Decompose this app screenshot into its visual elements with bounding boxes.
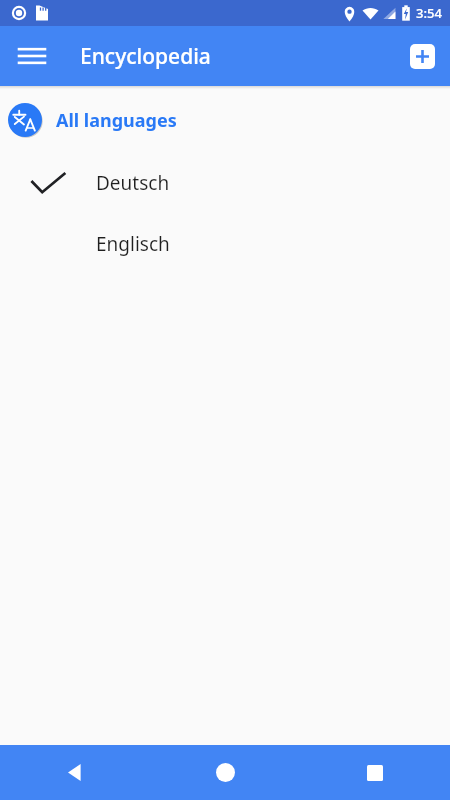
- button[interactable]: Recent apps: [300, 745, 450, 800]
- staticText: Encyclopedia: [80, 42, 211, 71]
- staticText: All languages: [56, 108, 177, 133]
- button[interactable]: Open navigation drawer: [8, 32, 56, 80]
- button[interactable]: Back: [0, 745, 150, 800]
- button[interactable]: Deutsch: [0, 152, 450, 213]
- button[interactable]: All languages: [0, 101, 450, 139]
- staticText: 3:54: [416, 4, 442, 22]
- button[interactable]: Englisch: [0, 213, 450, 274]
- button[interactable]: Home: [150, 745, 300, 800]
- button[interactable]: Add: [400, 34, 444, 78]
- staticText: Englisch: [96, 231, 170, 257]
- staticText: Deutsch: [96, 170, 170, 196]
